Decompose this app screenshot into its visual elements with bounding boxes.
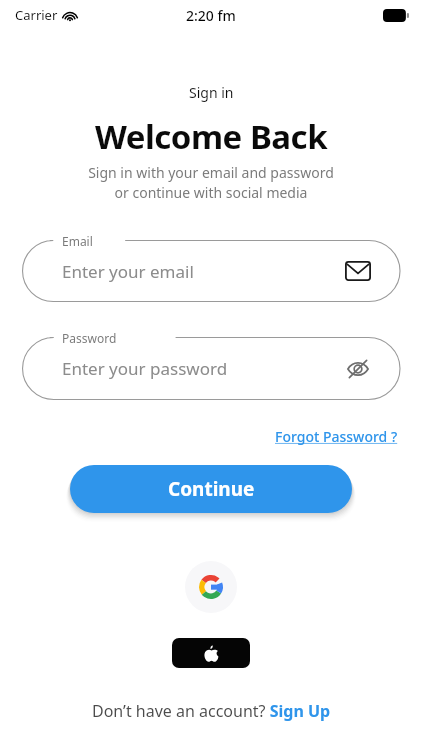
button[interactable]: Sign in with Google [185,561,237,613]
staticText: Enter your email [62,260,194,283]
staticText: 2:20 fm [186,6,236,25]
staticText: Don’t have an account? Sign Up [92,700,331,722]
staticText: Carrier [15,6,58,24]
staticText: Sign in [189,83,234,102]
staticText: Welcome Back [95,114,328,159]
staticText: Sign in with your email and password or … [88,163,334,202]
staticText: Email [62,233,93,249]
button[interactable]: Continue [70,465,352,513]
button[interactable]: Email [22,240,400,302]
button[interactable]: Forgot Password ? [273,425,400,448]
button[interactable]: Don’t have an account? Sign Up [92,700,331,722]
button[interactable]: Email [342,255,374,287]
button[interactable]: Sign in with Apple [172,638,250,668]
staticText: Forgot Password ? [275,427,398,446]
staticText: Enter your password [62,357,228,380]
button[interactable]: Password [22,337,400,400]
staticText: Password [62,330,117,346]
staticText: Continue [168,476,255,502]
button[interactable]: Show password [342,353,374,385]
